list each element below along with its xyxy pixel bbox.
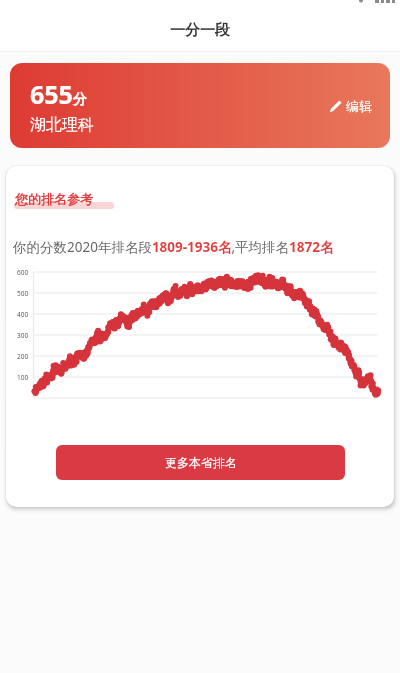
staticText: 分 [73,91,87,109]
staticText: 400 [17,310,29,319]
staticText: 500 [17,289,29,298]
staticText: 您的排名参考 [15,191,93,207]
staticText: 200 [17,352,29,361]
staticText: 300 [17,331,29,340]
button[interactable]: 655 [10,63,390,148]
staticText: 编辑 [346,98,372,114]
button[interactable]: 更多本省排名 [56,445,345,480]
other: 编辑 [329,99,343,113]
staticText: 你的分数2020年排名段1809-1936名,平均排名1872名 [13,238,334,256]
staticText: 湖北理科 [30,115,94,135]
staticText: 655 [30,77,73,111]
staticText: 更多本省排名 [165,455,237,470]
staticText: 600 [17,268,29,277]
button[interactable]: 编辑 [329,98,372,114]
staticText: 一分一段 [170,21,230,40]
staticText: 100 [17,373,29,382]
